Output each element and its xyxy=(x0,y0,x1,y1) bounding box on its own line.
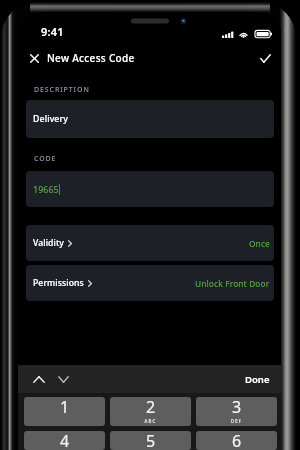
button[interactable]: Close xyxy=(24,48,44,68)
staticText: New Access Code xyxy=(47,51,135,65)
staticText: Once xyxy=(249,238,270,249)
button[interactable]: 2 xyxy=(110,397,191,426)
button[interactable]: Validity xyxy=(26,225,274,261)
staticText: ABC xyxy=(110,418,191,424)
staticText: DEF xyxy=(196,418,277,424)
button[interactable]: Previous field xyxy=(30,370,48,388)
staticText: 6 xyxy=(196,431,277,449)
button[interactable]: Permissions xyxy=(26,265,274,301)
staticText: 3 xyxy=(196,397,277,418)
staticText: 4 xyxy=(24,431,105,449)
staticText: CODE xyxy=(34,154,57,164)
button[interactable]: 1 xyxy=(24,397,105,426)
button[interactable]: Save xyxy=(255,48,275,68)
staticText: Validity xyxy=(33,237,64,249)
staticText: 5 xyxy=(110,431,191,449)
staticText: Done xyxy=(245,373,270,386)
button[interactable]: Next field xyxy=(54,370,72,388)
staticText: 19665 xyxy=(33,183,59,195)
button[interactable]: Done xyxy=(234,367,281,392)
staticText: Unlock Front Door xyxy=(195,278,270,289)
staticText: 2 xyxy=(110,397,191,418)
staticText: DESCRIPTION xyxy=(34,85,90,95)
button[interactable]: 3 xyxy=(196,397,277,426)
staticText: 9:41 xyxy=(41,24,64,39)
button[interactable]: 5 xyxy=(110,431,191,450)
staticText: Permissions xyxy=(33,277,84,289)
staticText: Delivery xyxy=(33,113,69,125)
button[interactable]: 4 xyxy=(24,431,105,450)
button[interactable]: 6 xyxy=(196,431,277,450)
staticText: 1 xyxy=(24,397,105,418)
